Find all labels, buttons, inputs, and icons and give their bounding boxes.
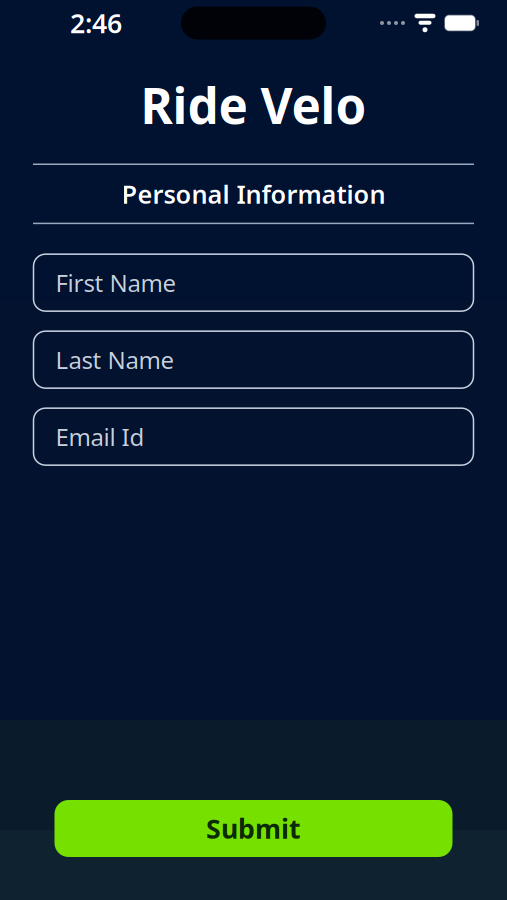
staticText: Last Name bbox=[55, 344, 174, 376]
button[interactable]: Submit bbox=[54, 800, 452, 857]
staticText: First Name bbox=[55, 267, 176, 299]
staticText: 2:46 bbox=[70, 5, 122, 41]
staticText: Email Id bbox=[55, 421, 144, 453]
button[interactable]: Email Id bbox=[33, 408, 473, 465]
staticText: Submit bbox=[206, 811, 301, 846]
staticText: Ride Velo bbox=[140, 72, 366, 137]
button[interactable]: Last Name bbox=[33, 331, 473, 388]
staticText: Personal Information bbox=[121, 177, 385, 211]
button[interactable]: First Name bbox=[33, 254, 473, 311]
